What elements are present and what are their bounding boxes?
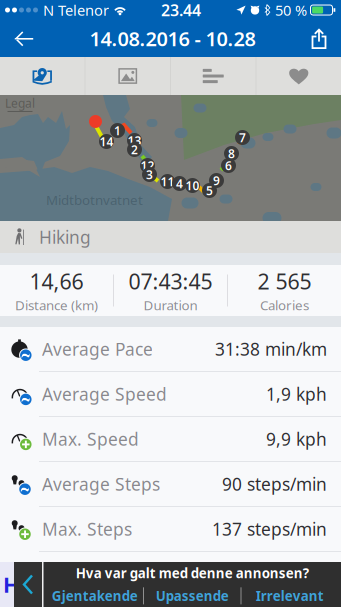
staticText: 31:38 min/km <box>215 337 327 360</box>
button[interactable]: Photos <box>85 57 170 95</box>
staticText: Max. Steps <box>42 517 132 540</box>
staticText: 11 <box>160 173 174 189</box>
staticText: 9,9 kph <box>266 427 327 450</box>
staticText: Irrelevant <box>256 587 324 605</box>
staticText: Hiking <box>39 225 91 248</box>
button[interactable]: Map <box>0 57 84 95</box>
staticText: Upassende <box>156 587 229 605</box>
button[interactable]: Average Speed <box>0 372 341 416</box>
button[interactable]: Statistics <box>171 57 255 95</box>
staticText: Gjentakende <box>52 587 138 605</box>
staticText: 50 % <box>275 0 307 20</box>
staticText: 2 565 <box>257 267 311 295</box>
staticText: Distance (km) <box>15 296 98 314</box>
staticText: 8 <box>228 145 235 161</box>
staticText: Average Steps <box>42 472 160 495</box>
staticText: 1,9 kph <box>266 382 327 405</box>
staticText: Midtbotnvatnet <box>46 191 143 209</box>
staticText: Hva var galt med denne annonsen? <box>76 564 309 582</box>
button[interactable]: Irrelevant <box>241 587 338 605</box>
button[interactable]: Back <box>5 20 43 57</box>
button[interactable]: Max. Speed <box>0 417 341 461</box>
staticText: 12 <box>140 157 154 173</box>
button[interactable]: Back <box>14 562 42 607</box>
staticText: 14,66 <box>29 267 83 295</box>
button[interactable]: Average Steps <box>0 462 341 506</box>
staticText: 137 steps/min <box>212 517 327 540</box>
staticText: 14 <box>99 133 113 149</box>
button[interactable]: Max. Steps <box>0 507 341 551</box>
button[interactable]: Share <box>302 20 336 57</box>
button[interactable]: Favorite <box>256 57 341 95</box>
staticText: 7 <box>239 129 246 145</box>
staticText: 13 <box>127 132 141 148</box>
staticText: Duration <box>143 296 197 314</box>
staticText: 2 <box>131 141 138 157</box>
staticText: Average Pace <box>42 337 153 360</box>
staticText: Max. Speed <box>42 427 139 450</box>
staticText: 10 <box>185 177 199 193</box>
staticText: Calories <box>260 296 309 314</box>
staticText: 23.44 <box>161 0 201 21</box>
staticText: 3 <box>146 166 153 182</box>
button[interactable]: Average Pace <box>0 327 341 371</box>
staticText: N Telenor <box>43 0 109 20</box>
staticText: 14.08.2016 - 10.28 <box>89 25 255 52</box>
staticText: H <box>3 570 19 599</box>
staticText: 90 steps/min <box>222 472 327 495</box>
staticText: 5 <box>206 182 213 198</box>
staticText: 9 <box>213 172 220 188</box>
staticText: 4 <box>176 175 183 191</box>
button[interactable]: Upassende <box>144 587 240 605</box>
staticText: Average Speed <box>42 382 167 405</box>
staticText: Legal <box>5 95 35 111</box>
staticText: 07:43:45 <box>128 267 212 295</box>
staticText: 6 <box>225 157 232 173</box>
button[interactable]: Gjentakende <box>46 587 143 605</box>
staticText: 1 <box>114 122 121 138</box>
